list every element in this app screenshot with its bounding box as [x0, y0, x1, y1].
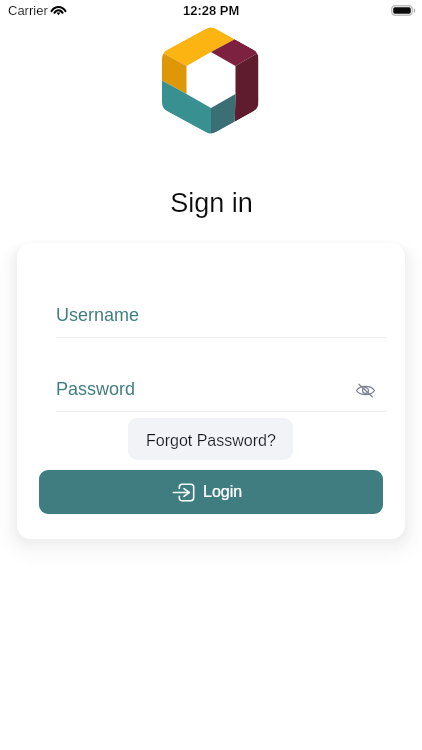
- staticText: Username: [56, 305, 140, 325]
- button[interactable]: [56, 369, 386, 412]
- staticText: Password: [56, 379, 136, 399]
- button[interactable]: [56, 295, 386, 338]
- button[interactable]: Forgot Password?: [128, 418, 293, 460]
- staticText: 12:28 PM: [183, 3, 240, 18]
- button[interactable]: Show password: [348, 374, 382, 406]
- staticText: Sign in: [170, 188, 253, 218]
- staticText: Login: [203, 483, 243, 501]
- staticText: Carrier: [8, 3, 48, 18]
- staticText: Forgot Password?: [146, 432, 276, 450]
- button[interactable]: Login: [39, 470, 383, 514]
